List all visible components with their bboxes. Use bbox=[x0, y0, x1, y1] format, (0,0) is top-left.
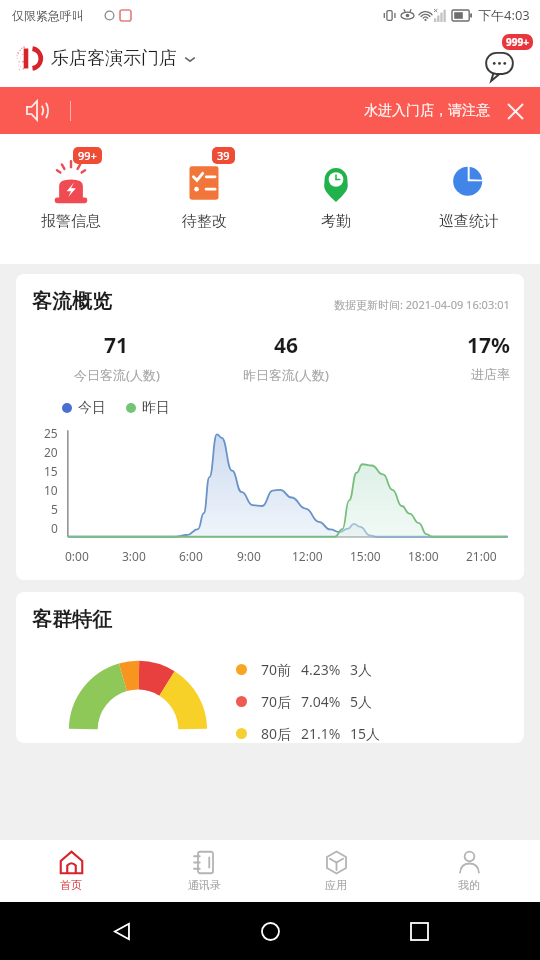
staticText: 3:00 bbox=[122, 548, 146, 564]
staticText: 今日客流(人数) bbox=[74, 366, 160, 384]
button[interactable]: Back bbox=[95, 904, 149, 958]
button[interactable]: 巡查统计 bbox=[407, 147, 531, 231]
staticText: 10 bbox=[44, 482, 58, 498]
staticText: 21:00 bbox=[466, 548, 497, 564]
staticText: 39 bbox=[217, 148, 230, 163]
staticText: 7.04% bbox=[301, 692, 341, 711]
staticText: 99+ bbox=[78, 148, 97, 163]
staticText: 水进入门店，请注意 bbox=[364, 102, 490, 120]
button[interactable]: 考勤 bbox=[274, 147, 398, 231]
staticText: 0 bbox=[51, 520, 58, 536]
staticText: 15人 bbox=[350, 724, 381, 743]
staticText: 25 bbox=[44, 425, 58, 441]
staticText: 应用 bbox=[325, 878, 347, 892]
staticText: 20 bbox=[44, 444, 58, 460]
button[interactable]: 我的 bbox=[407, 850, 531, 892]
staticText: 21.1% bbox=[301, 724, 341, 743]
staticText: 12:00 bbox=[292, 548, 323, 564]
staticText: 0:00 bbox=[65, 548, 89, 564]
button[interactable]: Messages bbox=[484, 36, 530, 82]
staticText: 3人 bbox=[350, 660, 373, 679]
staticText: 70后 bbox=[261, 692, 292, 711]
staticText: 9:00 bbox=[237, 548, 261, 564]
staticText: 报警信息 bbox=[41, 212, 101, 231]
staticText: 70前 bbox=[261, 660, 292, 679]
staticText: 进店率 bbox=[471, 366, 510, 382]
staticText: 数据更新时间: 2021-04-09 16:03:01 bbox=[334, 297, 510, 312]
staticText: 仅限紧急呼叫 bbox=[12, 8, 84, 23]
staticText: 巡查统计 bbox=[439, 212, 499, 231]
staticText: 客群特征 bbox=[32, 607, 112, 632]
button[interactable]: Close banner bbox=[498, 94, 532, 128]
staticText: 15:00 bbox=[350, 548, 381, 564]
staticText: 下午4:03 bbox=[478, 6, 530, 24]
button[interactable]: Recent apps bbox=[392, 904, 446, 958]
button[interactable]: Home bbox=[243, 904, 297, 958]
staticText: 5 bbox=[51, 501, 58, 517]
staticText: 18:00 bbox=[408, 548, 439, 564]
button[interactable]: 通讯录 bbox=[142, 850, 266, 892]
staticText: 15 bbox=[44, 463, 58, 479]
staticText: 今日 bbox=[78, 399, 106, 417]
staticText: 4.23% bbox=[301, 660, 341, 679]
staticText: 昨日 bbox=[142, 399, 170, 417]
staticText: 5人 bbox=[350, 692, 373, 711]
staticText: 46 bbox=[274, 331, 299, 360]
button[interactable]: 首页 bbox=[9, 850, 133, 892]
staticText: 80后 bbox=[261, 724, 292, 743]
button[interactable]: 39 bbox=[142, 147, 266, 231]
staticText: 6:00 bbox=[179, 548, 203, 564]
staticText: 昨日客流(人数) bbox=[243, 366, 329, 384]
staticText: 待整改 bbox=[182, 212, 227, 231]
staticText: 首页 bbox=[60, 878, 82, 892]
staticText: 通讯录 bbox=[188, 878, 221, 892]
button[interactable]: 应用 bbox=[274, 850, 398, 892]
staticText: 客流概览 bbox=[32, 289, 112, 314]
button[interactable]: 乐店客演示门店 bbox=[16, 41, 196, 76]
staticText: 考勤 bbox=[321, 212, 351, 231]
staticText: 71 bbox=[104, 331, 129, 360]
button[interactable]: 99+ bbox=[9, 147, 133, 231]
staticText: 17% bbox=[467, 331, 510, 360]
staticText: 999+ bbox=[506, 35, 529, 49]
staticText: 我的 bbox=[458, 878, 480, 892]
staticText: 乐店客演示门店 bbox=[51, 47, 177, 70]
